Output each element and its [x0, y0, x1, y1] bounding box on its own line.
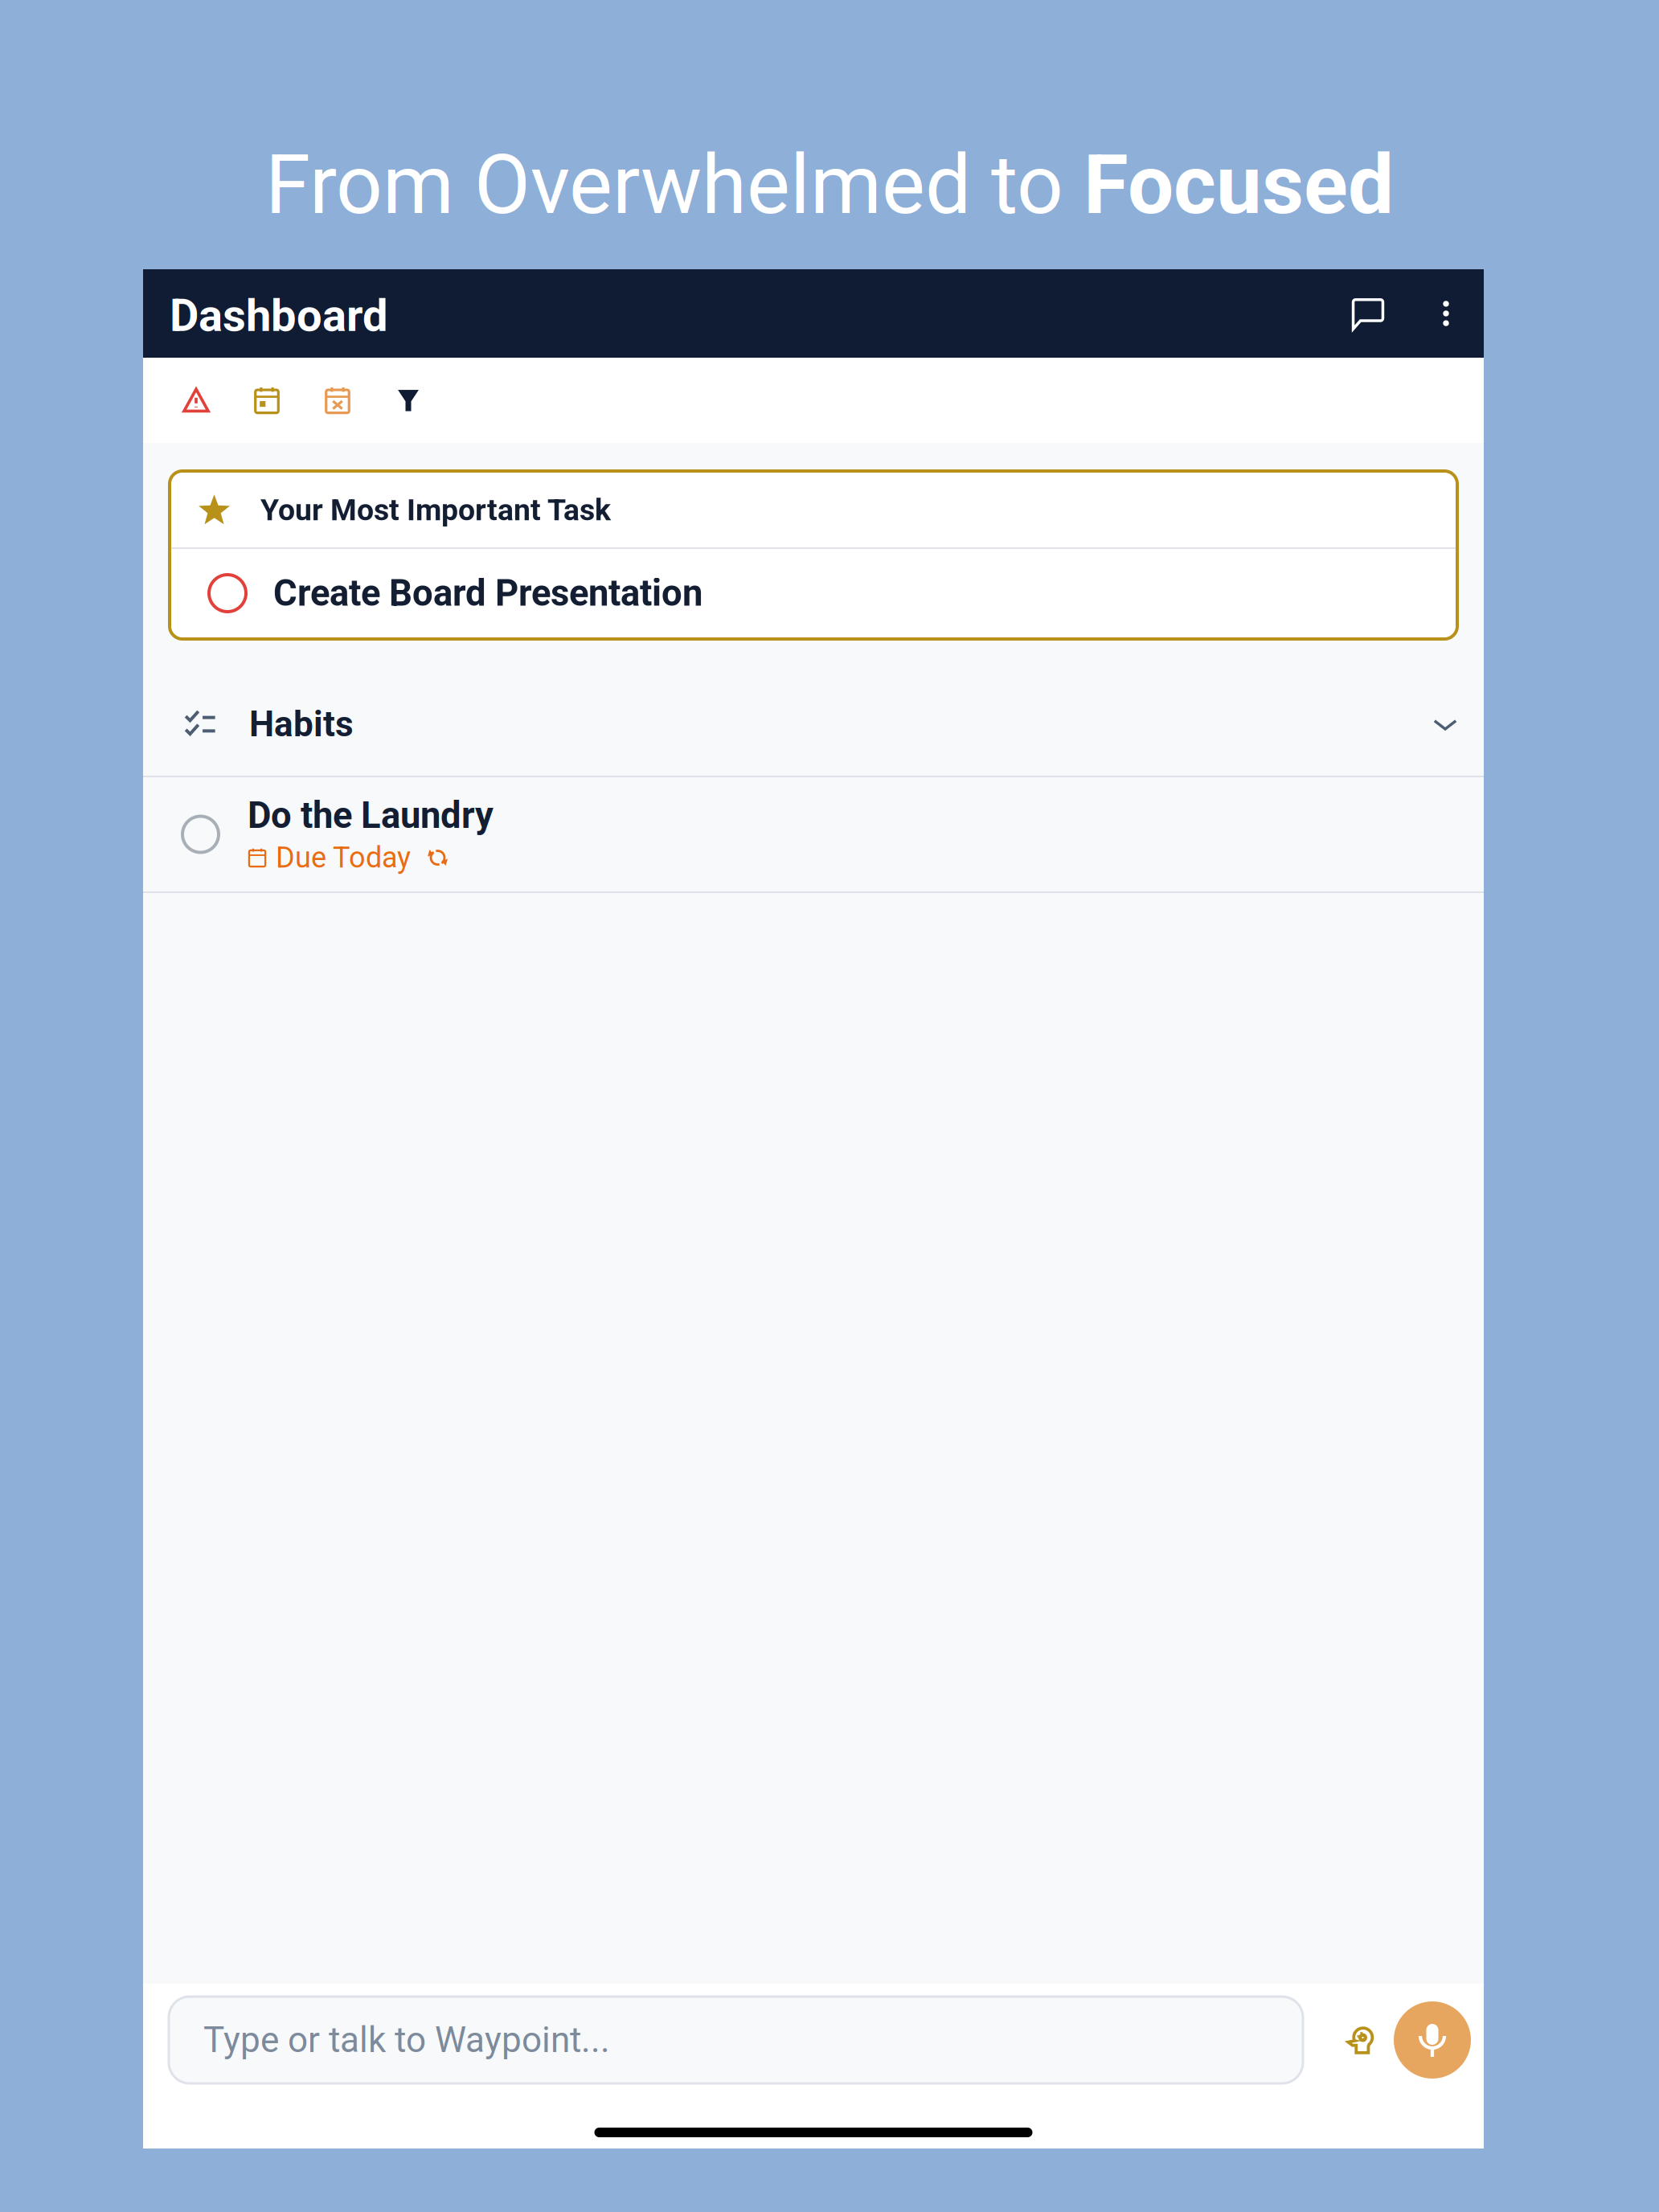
button[interactable]: More options — [1415, 269, 1477, 358]
staticText: Focused — [1083, 137, 1394, 233]
staticText: Due Today — [276, 841, 411, 875]
staticText: Habits — [249, 703, 354, 745]
button[interactable]: Unscheduled — [302, 358, 373, 443]
staticText: Create Board Presentation — [273, 572, 703, 614]
staticText: Type or talk to Waypoint... — [203, 2019, 610, 2061]
button[interactable]: Type or talk to Waypoint... — [169, 1997, 1303, 2083]
staticText: Do the Laundry — [248, 794, 494, 837]
staticText: Dashboard — [170, 289, 388, 342]
button[interactable]: Overdue tasks — [161, 358, 231, 443]
button[interactable]: Messages — [1321, 269, 1415, 358]
button[interactable]: Habits — [143, 641, 1484, 776]
button[interactable]: Filter — [373, 358, 444, 443]
button[interactable]: Voice input — [1394, 1997, 1471, 2083]
button[interactable]: Due today — [231, 358, 302, 443]
button[interactable]: AI assistant — [1303, 1997, 1394, 2083]
staticText: Your Most Important Task — [260, 492, 611, 528]
button[interactable]: Do the Laundry — [143, 777, 1484, 891]
staticText: From Overwhelmed to — [265, 137, 1083, 233]
